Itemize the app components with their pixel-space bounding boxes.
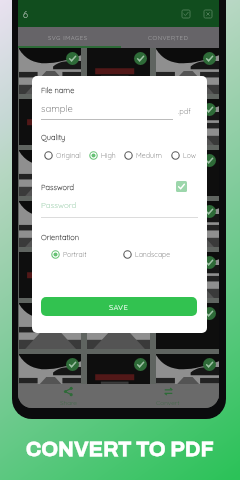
button[interactable]: Meduim xyxy=(124,151,162,160)
staticText: .pdf xyxy=(178,106,191,115)
staticText: Orientation xyxy=(41,232,80,241)
staticText: sample xyxy=(41,102,73,114)
button[interactable]: Share xyxy=(18,384,118,408)
staticText: Meduim xyxy=(136,151,162,160)
button[interactable]: Select all xyxy=(179,7,193,21)
staticText: Low xyxy=(183,151,197,160)
button[interactable]: Portrait xyxy=(51,250,87,259)
staticText: Quality xyxy=(41,132,66,141)
staticText: CONVERT TO PDF xyxy=(26,438,214,461)
button[interactable]: Close xyxy=(201,7,215,21)
staticText: Portrait xyxy=(63,250,87,259)
button[interactable]: SVG IMAGES xyxy=(18,27,118,48)
staticText: Password xyxy=(41,200,77,210)
button[interactable]: CONVERTED xyxy=(118,27,219,48)
staticText: High xyxy=(101,151,116,160)
staticText: Landscape xyxy=(135,250,171,259)
staticText: Original xyxy=(56,151,81,160)
button[interactable]: Original xyxy=(44,151,81,160)
staticText: Convert xyxy=(156,398,180,406)
button[interactable]: Low xyxy=(171,151,197,160)
staticText: CONVERTED xyxy=(148,34,189,42)
button[interactable]: Convert xyxy=(118,384,218,408)
staticText: SVG IMAGES xyxy=(48,34,88,42)
button[interactable]: SAVE xyxy=(41,297,197,316)
staticText: Password xyxy=(41,182,75,191)
staticText: Share xyxy=(60,398,77,406)
staticText: File name xyxy=(41,85,75,94)
button[interactable] xyxy=(176,181,187,192)
button[interactable]: High xyxy=(89,151,116,160)
button[interactable]: Landscape xyxy=(123,250,171,259)
staticText: SAVE xyxy=(109,302,129,311)
staticText: 6 xyxy=(23,9,28,20)
